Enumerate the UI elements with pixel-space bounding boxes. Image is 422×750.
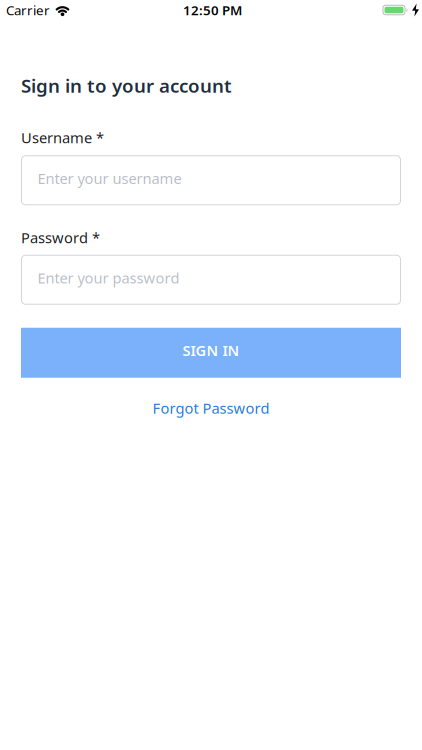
button[interactable]: Enter your password: [21, 255, 401, 305]
staticText: Carrier: [6, 1, 50, 19]
staticText: Sign in to your account: [21, 73, 232, 98]
staticText: Password *: [21, 228, 100, 247]
button[interactable]: SIGN IN: [21, 328, 401, 378]
button[interactable]: Forgot Password: [152, 398, 269, 418]
staticText: Username *: [21, 128, 104, 147]
staticText: Enter your username: [37, 168, 181, 188]
staticText: Enter your password: [37, 268, 179, 287]
staticText: Forgot Password: [152, 398, 269, 418]
staticText: SIGN IN: [182, 340, 239, 360]
staticText: 12:50 PM: [183, 1, 242, 19]
button[interactable]: Enter your username: [21, 155, 401, 205]
